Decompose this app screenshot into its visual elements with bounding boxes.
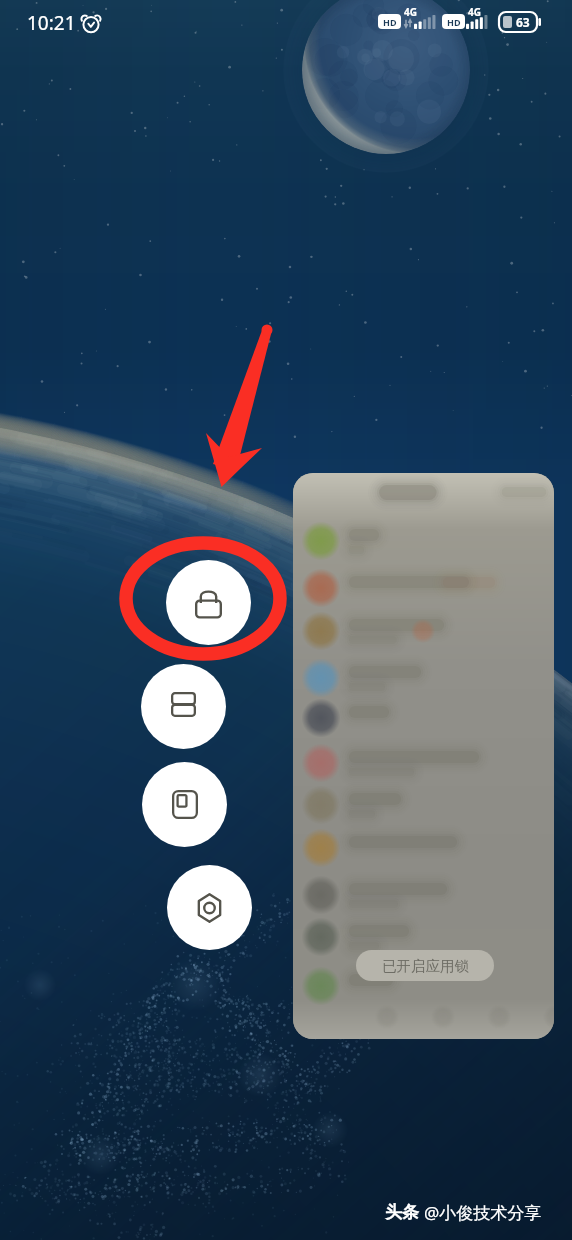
- button[interactable]: App lock: [166, 560, 251, 645]
- staticText: 4G: [468, 5, 481, 19]
- button[interactable]: Floating window: [142, 762, 227, 847]
- button[interactable]: Split screen: [141, 664, 226, 749]
- staticText: 63: [516, 14, 530, 30]
- staticText: 已开启应用锁: [382, 957, 469, 975]
- staticText: HD: [383, 16, 397, 28]
- staticText: 10:21: [27, 10, 76, 36]
- staticText: HD: [447, 16, 461, 28]
- button[interactable]: 已开启应用锁: [293, 473, 554, 1039]
- staticText: 头条: [385, 1202, 419, 1223]
- staticText: 4G: [404, 5, 417, 19]
- button[interactable]: Settings: [167, 865, 252, 950]
- staticText: @小俊技术分享: [424, 1201, 542, 1224]
